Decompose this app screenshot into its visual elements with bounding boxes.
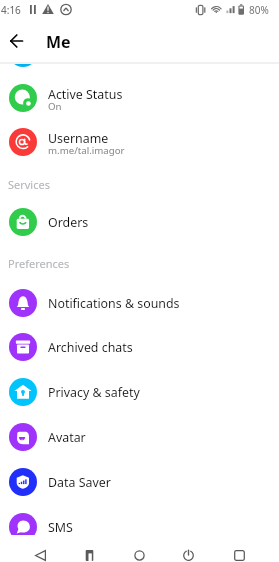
button[interactable]: Recents (227, 543, 251, 562)
staticText: SMS (48, 519, 73, 536)
staticText: Archived chats (48, 339, 133, 356)
staticText: Avatar (48, 429, 86, 446)
staticText: Orders (48, 214, 89, 231)
button[interactable]: Username (0, 119, 279, 164)
staticText: Services (8, 177, 50, 192)
button[interactable]: Notifications & sounds (0, 280, 279, 325)
staticText: Notifications & sounds (48, 295, 180, 312)
button[interactable]: Power (176, 543, 200, 562)
staticText: Privacy & safety (48, 384, 140, 401)
staticText: On (48, 100, 62, 113)
button[interactable]: Back (4, 29, 28, 53)
staticText: 80% (249, 3, 269, 17)
button[interactable]: Home (127, 543, 151, 562)
button[interactable]: SMS (0, 504, 279, 549)
staticText: 4:16 (1, 3, 21, 17)
button[interactable]: Active Status (0, 75, 279, 120)
staticText: m.me/tal.imagor (48, 144, 125, 157)
staticText: Preferences (8, 256, 70, 271)
staticText: Data Saver (48, 474, 111, 491)
button[interactable]: Back (28, 543, 52, 562)
staticText: Active Status (48, 86, 123, 103)
button[interactable]: Privacy & safety (0, 369, 279, 414)
button[interactable]: Avatar (0, 414, 279, 459)
staticText: Me (46, 31, 71, 53)
button[interactable]: Screenshot (77, 543, 101, 562)
button[interactable]: Data Saver (0, 459, 279, 504)
button[interactable]: Orders (0, 199, 279, 244)
staticText: Username (48, 130, 109, 147)
button[interactable]: Archived chats (0, 324, 279, 369)
